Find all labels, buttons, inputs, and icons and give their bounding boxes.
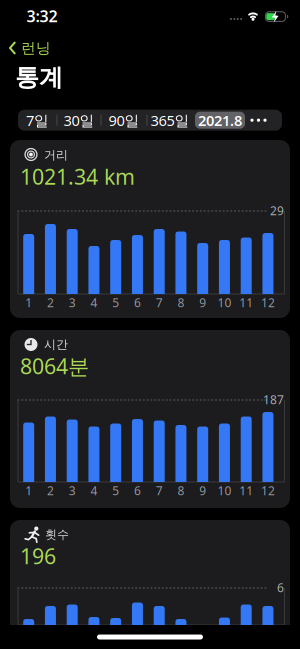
staticText: 7 (156, 482, 163, 498)
staticText: 10 (217, 294, 231, 310)
staticText: 4 (90, 482, 97, 498)
staticText: 6 (277, 579, 284, 595)
staticText: 런닝 (21, 39, 51, 57)
staticText: 1021.34 km (20, 162, 135, 191)
staticText: 9 (199, 294, 206, 310)
staticText: 196 (20, 542, 56, 570)
staticText: 2021.8 (198, 110, 242, 130)
staticText: 187 (263, 391, 284, 407)
staticText: 통계 (15, 63, 63, 92)
staticText: 거리 (44, 148, 68, 162)
staticText: 12 (261, 294, 275, 310)
staticText: 11 (239, 482, 253, 498)
staticText: 3 (69, 482, 76, 498)
staticText: 365일 (150, 110, 189, 130)
button[interactable]: 7일 (18, 110, 57, 131)
staticText: 4 (90, 294, 97, 310)
staticText: 8 (177, 482, 184, 498)
staticText: 횟수 (45, 527, 69, 542)
staticText: 8064분 (20, 352, 89, 380)
staticText: 8 (177, 294, 184, 310)
button[interactable]: 2021.8 (193, 110, 247, 131)
staticText: 9 (199, 482, 206, 498)
staticText: 2 (47, 294, 54, 310)
button[interactable] (247, 110, 282, 131)
staticText: 29 (270, 202, 284, 218)
staticText: 3:32 (26, 5, 57, 27)
staticText: 3 (69, 294, 76, 310)
staticText: 1 (25, 482, 32, 498)
staticText: 12 (261, 482, 275, 498)
staticText: 10 (217, 482, 231, 498)
button[interactable]: 30일 (57, 110, 101, 131)
staticText: 5 (112, 294, 119, 310)
staticText: 시간 (44, 337, 68, 352)
staticText: 7일 (26, 110, 49, 130)
staticText: 90일 (108, 110, 139, 130)
button[interactable]: 런닝 (9, 39, 51, 57)
staticText: 7 (156, 294, 163, 310)
staticText: 6 (134, 482, 141, 498)
staticText: 5 (112, 482, 119, 498)
button[interactable]: 90일 (101, 110, 147, 131)
staticText: 1 (25, 294, 32, 310)
button[interactable]: 365일 (147, 110, 193, 131)
staticText: 11 (239, 294, 253, 310)
staticText: 30일 (63, 110, 94, 130)
staticText: 2 (47, 482, 54, 498)
staticText: 6 (134, 294, 141, 310)
